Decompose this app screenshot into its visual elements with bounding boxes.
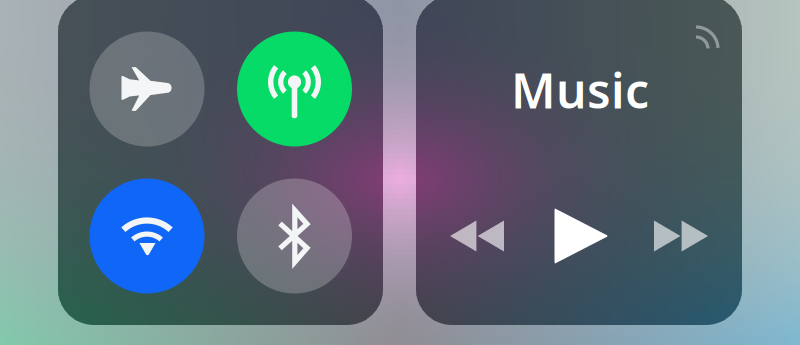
button[interactable]: Rewind	[435, 202, 519, 270]
button[interactable]: Wi-Fi	[89, 178, 204, 293]
button[interactable]: Airplane Mode	[89, 31, 204, 146]
button[interactable]: Bluetooth	[237, 178, 352, 293]
button[interactable]: Cellular Data	[237, 31, 352, 146]
button[interactable]: Play	[539, 202, 623, 270]
button[interactable]: AirPlay	[686, 14, 730, 58]
staticText: Music	[511, 58, 649, 122]
button[interactable]: Fast Forward	[639, 202, 723, 270]
